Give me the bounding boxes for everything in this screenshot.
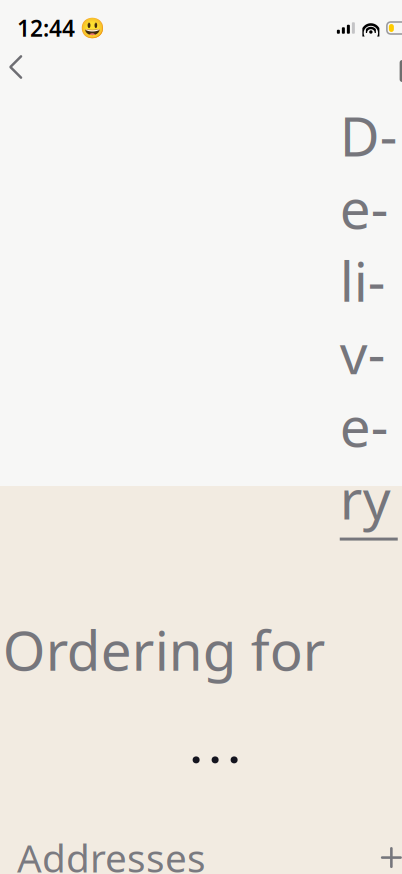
staticText: 12:44: [17, 13, 75, 43]
button[interactable]: Back: [0, 45, 38, 89]
button[interactable]: Add address: [369, 836, 402, 874]
button[interactable]: Shopping bag: [392, 45, 402, 89]
staticText: Delivery: [340, 99, 398, 535]
staticText: Addresses: [17, 832, 206, 874]
button[interactable]: Delivery: [340, 99, 398, 686]
staticText: 😃: [80, 17, 105, 39]
staticText: Ordering for: [3, 613, 340, 686]
